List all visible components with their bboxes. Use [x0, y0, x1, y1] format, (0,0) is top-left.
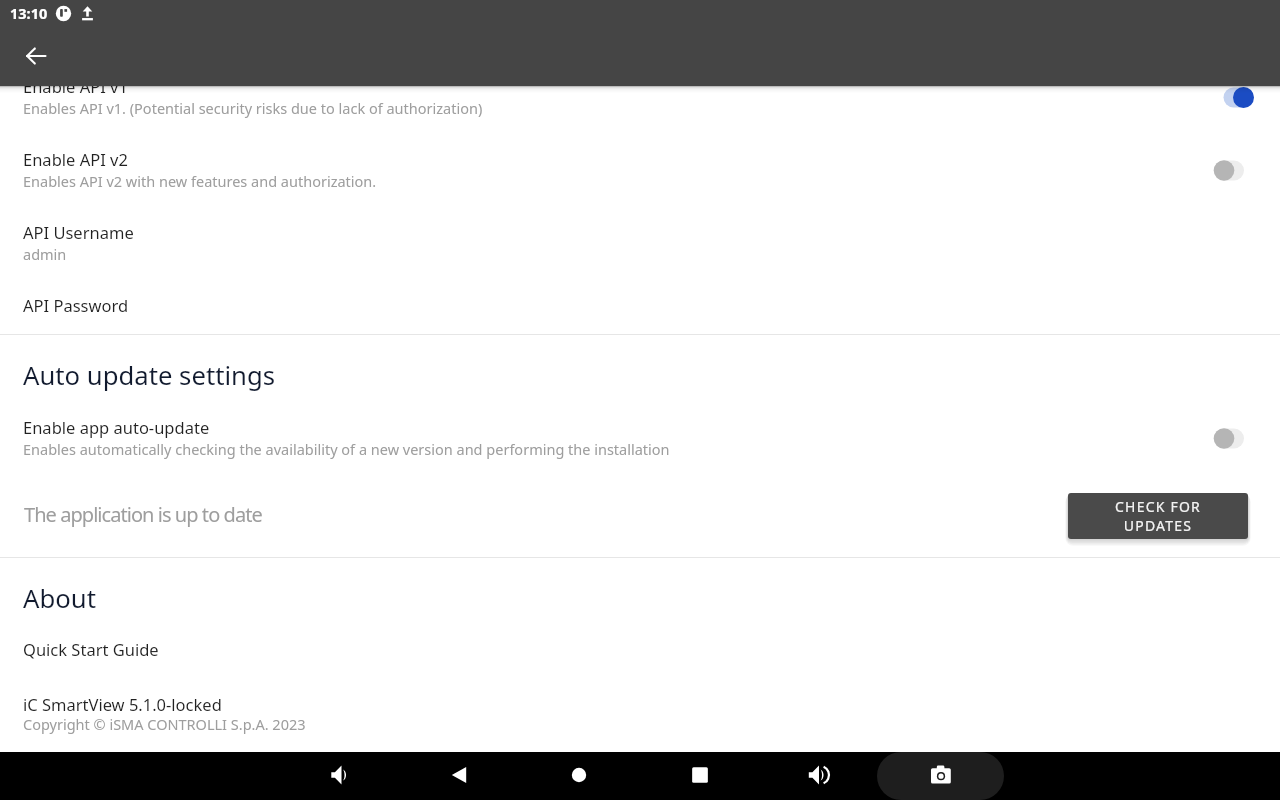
staticText: Quick Start Guide	[23, 638, 159, 660]
staticText: Enables API v2 with new features and aut…	[23, 171, 377, 191]
button[interactable]: Recents	[680, 755, 720, 795]
staticText: Enable API v1	[23, 86, 128, 97]
staticText: Copyright © iSMA CONTROLLI S.p.A. 2023	[23, 714, 306, 734]
staticText: API Password	[23, 294, 129, 316]
staticText: 13:10	[10, 3, 48, 23]
staticText: admin	[23, 244, 67, 264]
button[interactable]: Quick Start Guide	[0, 634, 1280, 664]
staticText: The application is up to date	[24, 501, 262, 528]
button[interactable]: Enable API v1, on	[1204, 86, 1264, 118]
button[interactable]: Back	[439, 755, 479, 795]
button[interactable]: CHECK FOR UPDATES	[1068, 493, 1248, 539]
button[interactable]: Enable app auto-update	[0, 402, 1280, 468]
button[interactable]: API Password	[0, 280, 1280, 332]
button[interactable]: Back	[18, 38, 54, 74]
button[interactable]: Enable API v1	[0, 86, 1280, 127]
button[interactable]: Screenshot	[877, 752, 1004, 800]
staticText: API Username	[23, 221, 134, 243]
button[interactable]: Enable app auto-update, off	[1204, 418, 1264, 459]
staticText: Enable app auto-update	[23, 416, 210, 438]
button[interactable]: Home	[559, 755, 599, 795]
staticText: About	[23, 581, 96, 616]
staticText: Enable API v2	[23, 148, 128, 170]
button[interactable]: Volume down	[320, 755, 360, 795]
staticText: iC SmartView 5.1.0-locked	[23, 693, 222, 715]
staticText: CHECK FOR UPDATES	[1103, 497, 1213, 535]
button[interactable]: Enable API v2, off	[1204, 150, 1264, 191]
staticText: Enables automatically checking the avail…	[23, 439, 670, 459]
staticText: Enables API v1. (Potential security risk…	[23, 98, 483, 118]
button[interactable]: Enable API v2	[0, 134, 1280, 200]
button[interactable]: API Username	[0, 207, 1280, 273]
button[interactable]: Volume up	[800, 755, 840, 795]
staticText: Auto update settings	[23, 358, 276, 393]
